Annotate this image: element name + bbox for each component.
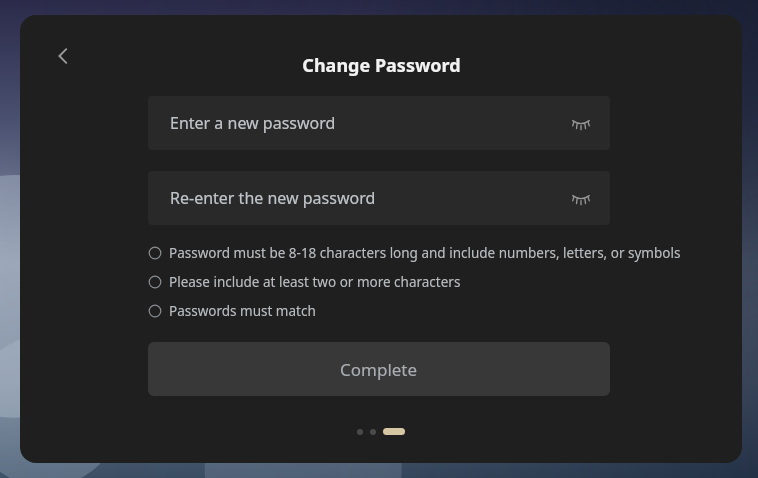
button[interactable]: Re-enter the new password (148, 171, 610, 225)
button[interactable]: Back (44, 37, 82, 75)
staticText: Passwords must match (169, 302, 316, 320)
staticText: Complete (340, 358, 418, 381)
button[interactable]: Complete (148, 342, 610, 396)
button[interactable]: Please include at least two or more char… (148, 270, 461, 294)
staticText: Password must be 8-18 characters long an… (169, 244, 681, 262)
button[interactable]: Show password (566, 108, 596, 138)
staticText: Enter a new password (170, 112, 336, 134)
button[interactable]: Enter a new password (148, 96, 610, 150)
button[interactable]: Show password (566, 183, 596, 213)
button[interactable]: Passwords must match (148, 299, 316, 323)
staticText: Please include at least two or more char… (169, 273, 461, 291)
staticText: Re-enter the new password (170, 187, 376, 209)
staticText: Change Password (302, 53, 461, 78)
button[interactable]: Password must be 8-18 characters long an… (148, 241, 681, 265)
